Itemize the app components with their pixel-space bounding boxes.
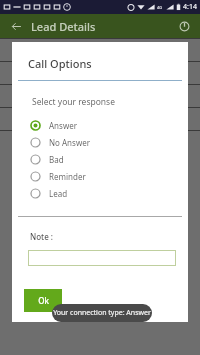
staticText: 4G <box>157 5 163 10</box>
staticText: Your connection type: Answer <box>53 308 151 318</box>
button[interactable]: Reminder <box>12 168 188 185</box>
staticText: Select your response <box>32 96 115 108</box>
staticText: Lead Details <box>31 19 96 34</box>
button[interactable]: Lead <box>12 185 188 202</box>
button[interactable]: Bad <box>12 151 188 168</box>
staticText: Reminder <box>49 171 86 182</box>
button[interactable]: Power <box>174 16 194 36</box>
button[interactable]: Ok <box>24 289 62 312</box>
staticText: Answer <box>49 120 77 131</box>
button[interactable]: Back <box>6 16 26 36</box>
button[interactable]: Answer <box>12 117 188 134</box>
staticText: Bad <box>49 154 64 165</box>
staticText: Call Options <box>28 56 92 71</box>
staticText: 4:14 <box>183 2 197 12</box>
staticText: Ok <box>38 295 49 306</box>
staticText: No Answer <box>49 137 90 148</box>
button[interactable]: No Answer <box>12 134 188 151</box>
staticText: Lead <box>49 188 68 199</box>
button[interactable] <box>28 250 176 266</box>
staticText: Note : <box>30 231 54 242</box>
